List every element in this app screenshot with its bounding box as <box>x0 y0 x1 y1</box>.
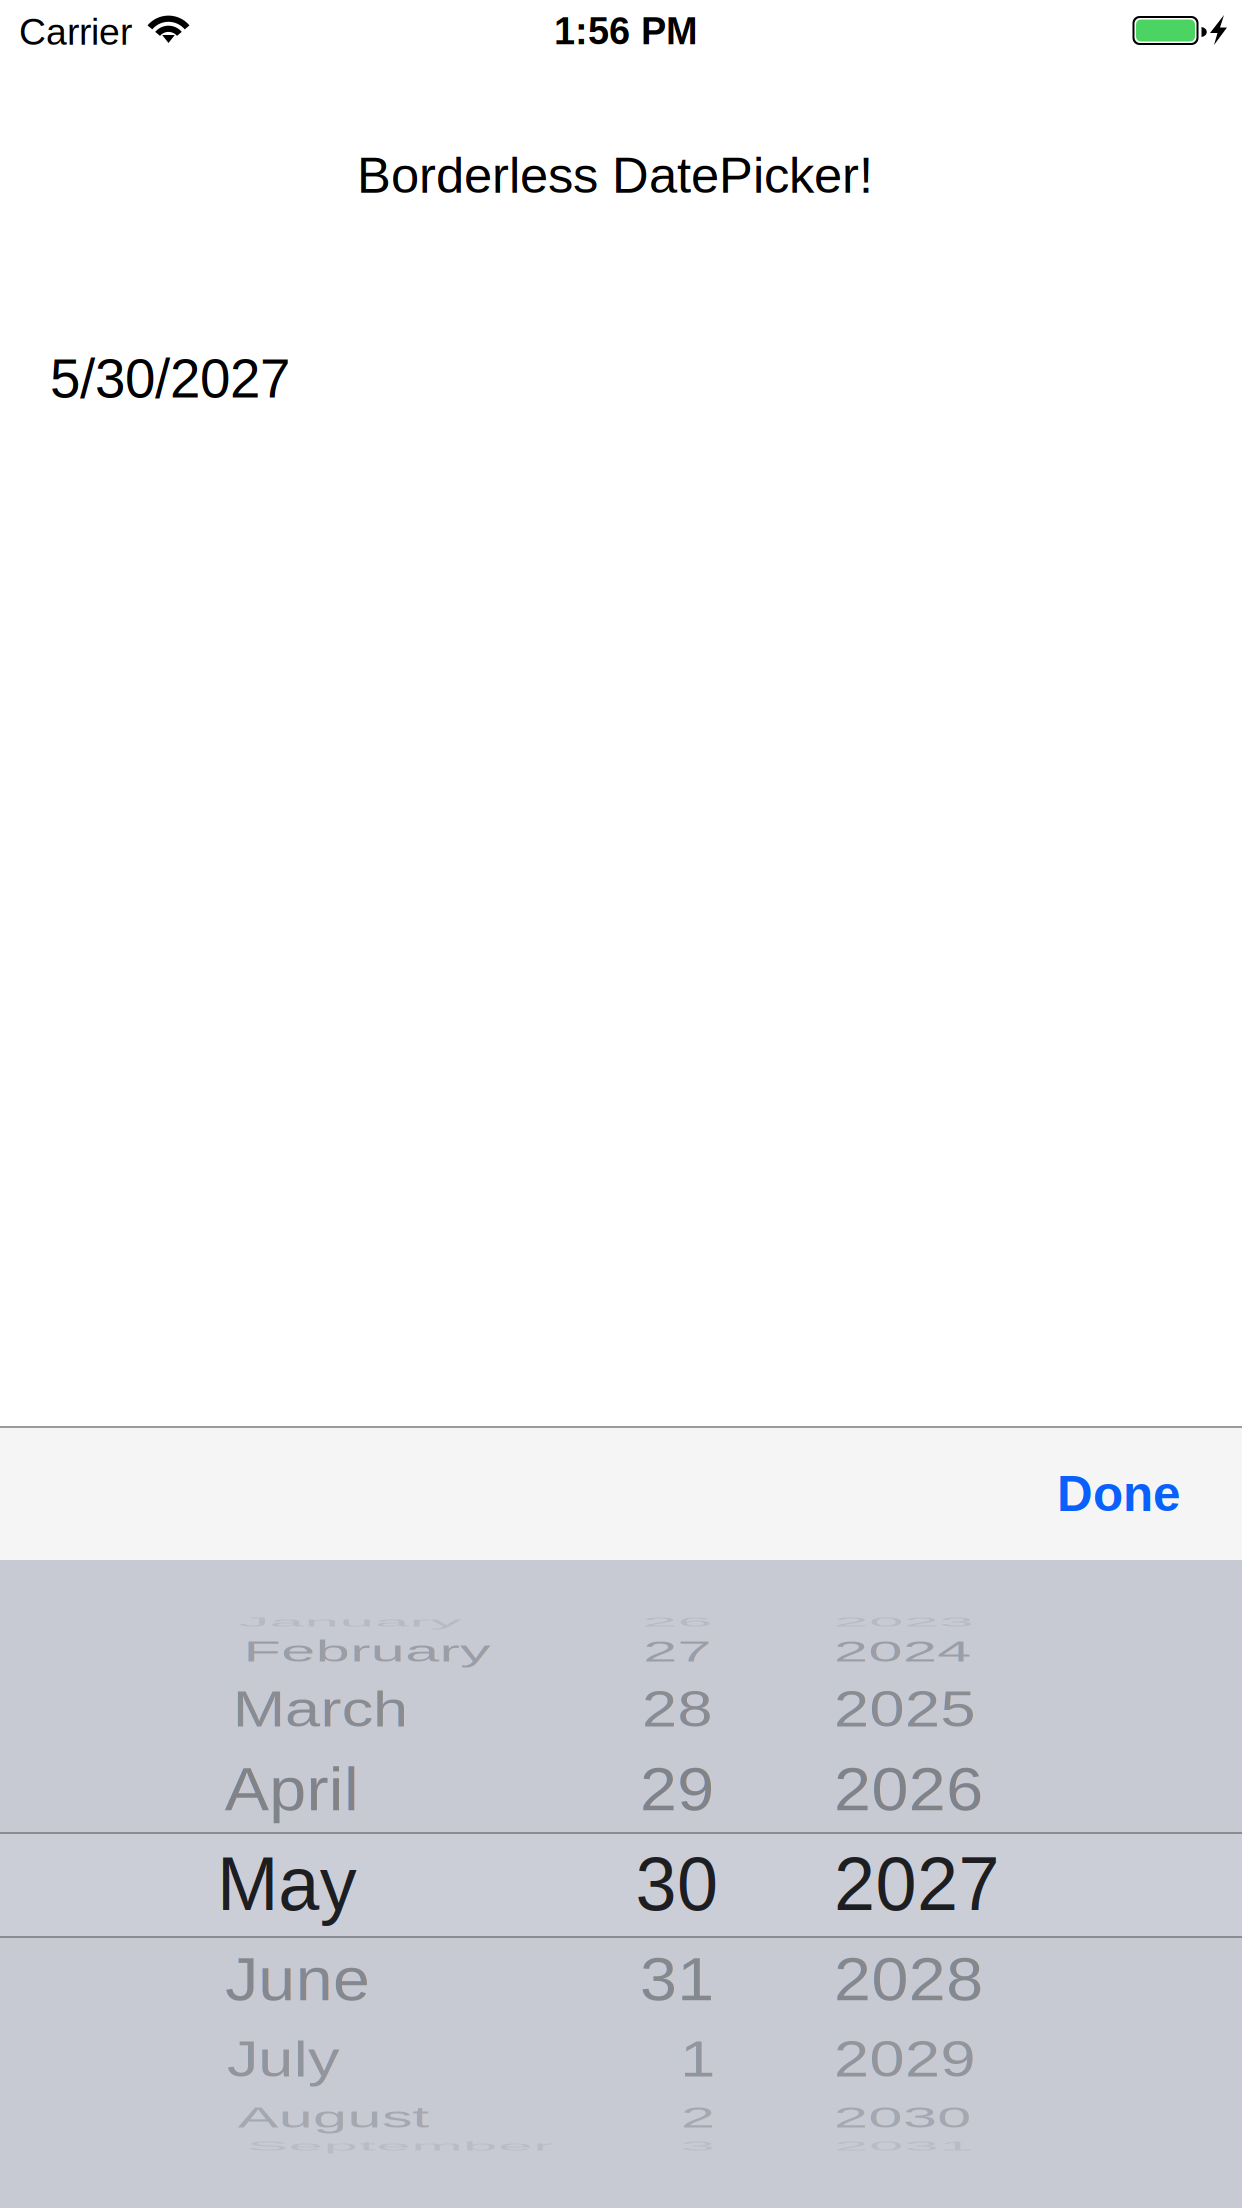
staticText: March <box>216 1667 424 1751</box>
staticText: 30 <box>635 1842 719 1926</box>
staticText: 3 <box>676 2104 718 2188</box>
staticText: 2025 <box>834 1667 1002 1751</box>
staticText: 29 <box>635 1747 719 1831</box>
staticText: 5/30/2027 <box>50 348 290 409</box>
staticText: 28 <box>635 1667 719 1751</box>
staticText: February <box>216 1609 517 1693</box>
staticText: June <box>216 1937 379 2021</box>
staticText: July <box>216 2017 349 2101</box>
staticText: 2 <box>676 2075 718 2159</box>
staticText: Carrier <box>19 11 132 53</box>
staticText: 27 <box>635 1609 719 1693</box>
staticText: January <box>216 1580 483 1664</box>
staticText: 2026 <box>834 1747 1002 1831</box>
staticText: 2024 <box>834 1609 1002 1693</box>
staticText: 2023 <box>834 1580 1002 1664</box>
staticText: 2030 <box>834 2075 1002 2159</box>
staticText: 2029 <box>834 2017 1002 2101</box>
staticText: 2031 <box>834 2104 1002 2188</box>
staticText: April <box>216 1747 367 1831</box>
staticText: 1 <box>676 2017 718 2101</box>
button[interactable]: Done <box>940 1428 1242 1560</box>
staticText: September <box>216 2104 584 2188</box>
staticText: May <box>216 1842 357 1926</box>
staticText: August <box>216 2075 450 2159</box>
staticText: 26 <box>635 1580 719 1664</box>
staticText: 31 <box>635 1937 719 2021</box>
staticText: 1:56 PM <box>554 10 698 52</box>
staticText: 2028 <box>834 1937 1002 2021</box>
staticText: Done <box>1057 1466 1180 1521</box>
staticText: 2027 <box>834 1842 1002 1926</box>
staticText: Borderless DatePicker! <box>357 147 873 204</box>
